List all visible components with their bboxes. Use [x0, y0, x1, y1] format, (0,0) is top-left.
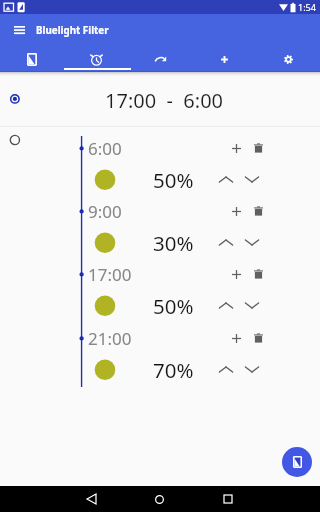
- button[interactable]: Back: [79, 486, 103, 512]
- button[interactable]: Decrease: [242, 359, 262, 379]
- button[interactable]: Increase: [216, 232, 236, 252]
- staticText: 50%: [153, 166, 194, 194]
- button[interactable]: Delete step: [248, 328, 268, 348]
- button[interactable]: Schedule: [64, 46, 128, 72]
- button[interactable]: Decrease: [242, 169, 262, 189]
- button[interactable]: Add schedule: [192, 46, 256, 72]
- staticText: Bluelight Filter: [36, 24, 109, 37]
- staticText: 21:00: [88, 327, 132, 350]
- button[interactable]: 17:00 - 6:00: [0, 72, 320, 126]
- button[interactable]: Add step: [226, 264, 246, 284]
- button[interactable]: Screen filter: [0, 46, 64, 72]
- staticText: 17:00: [88, 263, 132, 286]
- button[interactable]: Add step: [226, 138, 246, 158]
- button[interactable]: Delete step: [248, 264, 268, 284]
- button[interactable]: Add step: [226, 201, 246, 221]
- staticText: 30%: [153, 229, 194, 257]
- staticText: 6:00: [88, 137, 122, 160]
- button[interactable]: Increase: [216, 169, 236, 189]
- staticText: 50%: [153, 292, 194, 320]
- button[interactable]: Settings: [256, 46, 320, 72]
- button[interactable]: Delete step: [248, 201, 268, 221]
- button[interactable]: Add step: [226, 328, 246, 348]
- button[interactable]: Decrease: [242, 232, 262, 252]
- button[interactable]: Recents: [216, 486, 240, 512]
- staticText: 1:54: [298, 1, 316, 13]
- button[interactable]: Decrease: [242, 295, 262, 315]
- staticText: 9:00: [88, 200, 122, 223]
- button[interactable]: Reset: [128, 46, 192, 72]
- staticText: 17:00 - 6:00: [105, 87, 224, 114]
- button[interactable]: Delete step: [248, 138, 268, 158]
- button[interactable]: Increase: [216, 295, 236, 315]
- button[interactable]: Menu: [7, 14, 31, 46]
- staticText: 70%: [153, 356, 194, 384]
- button[interactable]: Increase: [216, 359, 236, 379]
- button[interactable]: Home: [147, 486, 171, 512]
- button[interactable]: Toggle filter: [282, 447, 312, 477]
